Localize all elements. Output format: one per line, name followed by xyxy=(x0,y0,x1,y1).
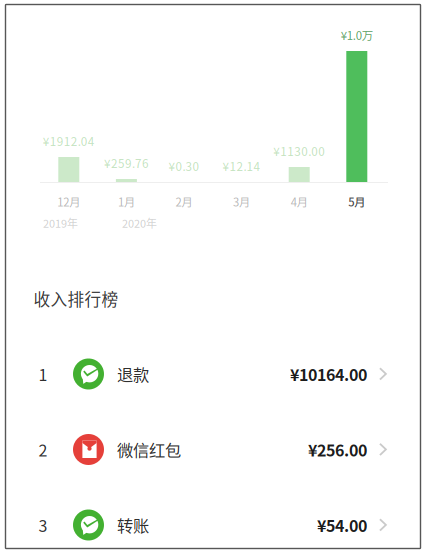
staticText: 1 xyxy=(38,362,47,386)
staticText: 3 xyxy=(38,513,47,537)
staticText: ¥256.00 xyxy=(308,438,367,461)
staticText: 2月 xyxy=(175,193,192,210)
staticText: 收入排行榜 xyxy=(33,286,118,310)
button[interactable]: 2 xyxy=(5,412,421,487)
staticText: ¥1130.00 xyxy=(273,142,325,159)
button[interactable]: 3 xyxy=(5,487,421,553)
staticText: ¥12.14 xyxy=(223,157,261,174)
staticText: 1月 xyxy=(118,193,135,210)
staticText: 4月 xyxy=(291,193,308,210)
staticText: 微信红包 xyxy=(117,438,181,461)
staticText: ¥10164.00 xyxy=(290,362,367,386)
staticText: ¥1.0万 xyxy=(341,27,373,43)
staticText: ¥54.00 xyxy=(317,513,367,537)
staticText: ¥259.76 xyxy=(104,154,149,171)
staticText: 2019年 xyxy=(43,215,78,231)
staticText: ¥0.30 xyxy=(168,157,199,174)
staticText: 2020年 xyxy=(122,215,157,231)
button[interactable]: 1 xyxy=(5,336,421,411)
staticText: 2 xyxy=(38,438,47,461)
staticText: 转账 xyxy=(117,513,149,537)
staticText: 退款 xyxy=(117,362,149,386)
staticText: 5月 xyxy=(348,193,365,210)
staticText: 3月 xyxy=(233,193,250,210)
staticText: 12月 xyxy=(57,193,80,210)
staticText: ¥1912.04 xyxy=(43,132,95,149)
